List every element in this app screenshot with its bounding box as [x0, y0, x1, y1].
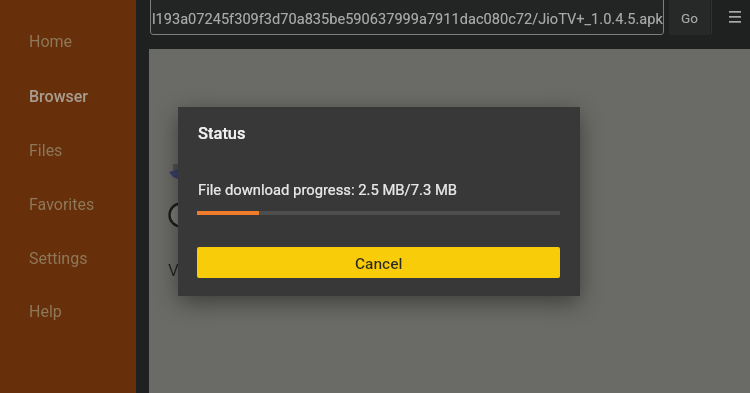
button[interactable]: l193a07245f309f3d70a835be590637999a7911d… — [150, 0, 664, 35]
button[interactable]: Go — [669, 0, 710, 35]
staticText: File download progress: 2.5 MB/7.3 MB — [198, 181, 458, 198]
button[interactable]: Help — [0, 294, 136, 328]
staticText: l193a07245f309f3d70a835be590637999a7911d… — [152, 10, 663, 27]
staticText: Help — [29, 302, 62, 321]
staticText: Home — [29, 32, 73, 51]
staticText: Status — [198, 124, 246, 143]
button[interactable]: Menu — [718, 0, 750, 35]
button[interactable]: Files — [0, 133, 136, 167]
button[interactable]: Settings — [0, 241, 136, 275]
staticText: Cancel — [355, 255, 403, 273]
button[interactable]: Browser — [0, 79, 136, 113]
staticText: Settings — [29, 249, 88, 268]
staticText: Files — [29, 141, 63, 160]
button[interactable]: Favorites — [0, 187, 136, 221]
staticText: Favorites — [29, 195, 95, 214]
button[interactable]: Home — [0, 24, 136, 58]
staticText: V — [168, 260, 179, 280]
staticText: Browser — [29, 87, 88, 106]
button[interactable]: Cancel — [197, 247, 560, 278]
staticText: Go — [681, 10, 698, 26]
